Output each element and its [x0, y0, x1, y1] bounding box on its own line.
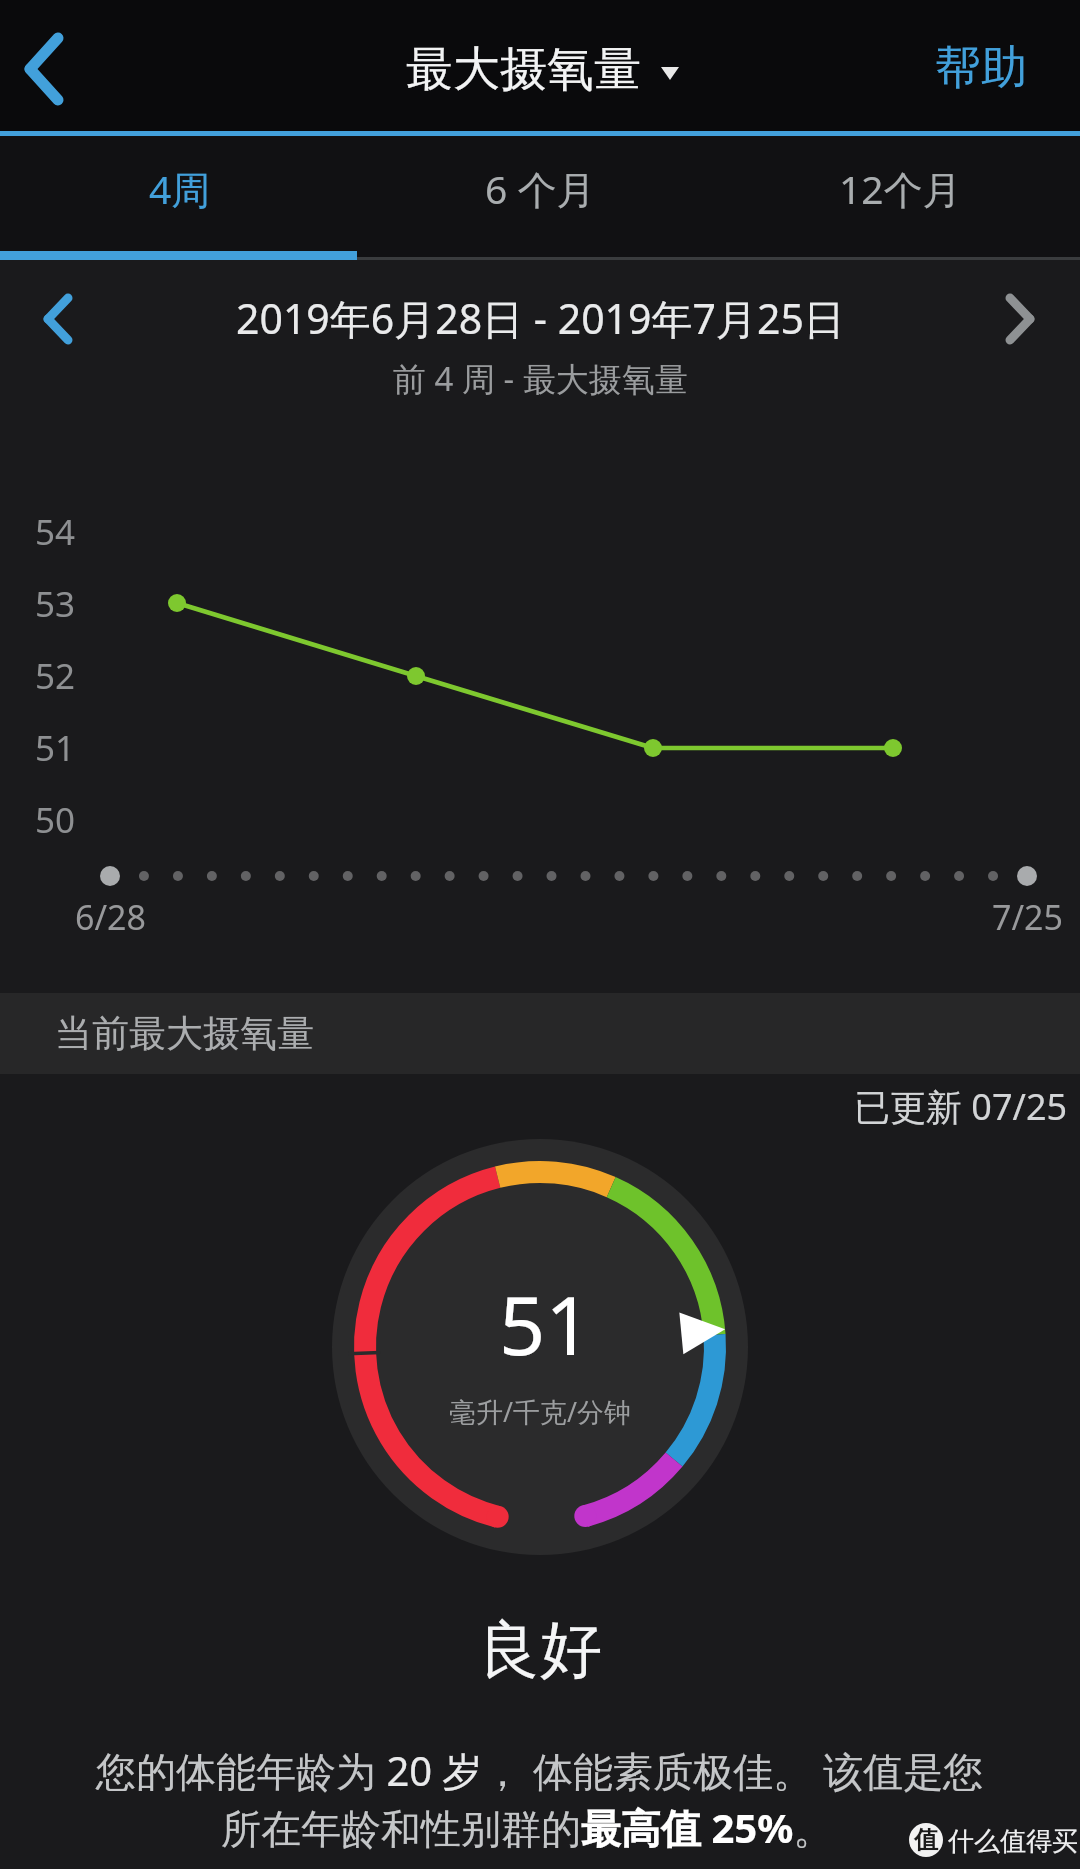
staticText: 所在年龄和性别群的最高值 25%。: [221, 1800, 834, 1855]
staticText: 54: [35, 508, 76, 556]
button[interactable]: [980, 280, 1060, 360]
staticText: 6 个月: [485, 162, 596, 215]
button[interactable]: 6 个月: [360, 129, 720, 247]
staticText: 53: [35, 580, 76, 628]
staticText: 最大摄氧量: [406, 40, 641, 99]
button[interactable]: [10, 20, 100, 115]
staticText: 已更新 07/25: [854, 1082, 1068, 1131]
button[interactable]: 帮助: [901, 28, 1061, 108]
staticText: 50: [35, 796, 76, 844]
button[interactable]: 12个月: [720, 129, 1080, 247]
staticText: 您的体能年龄为 20 岁， 体能素质极佳。 该值是您: [96, 1743, 984, 1798]
staticText: 当前最大摄氧量: [55, 1010, 314, 1057]
staticText: 6/28: [75, 894, 146, 940]
staticText: 帮助: [935, 39, 1027, 97]
staticText: 51: [35, 724, 76, 772]
staticText: 7/25: [992, 894, 1063, 940]
staticText: 51: [499, 1268, 592, 1378]
staticText: 52: [35, 652, 76, 700]
staticText: 4周: [149, 162, 211, 215]
staticText: 良好: [478, 1611, 602, 1689]
staticText: 前 4 周 - 最大摄氧量: [393, 356, 688, 401]
button[interactable]: [20, 280, 100, 360]
staticText: 什么值得买: [948, 1825, 1078, 1858]
staticText: 12个月: [839, 162, 962, 215]
button[interactable]: 最大摄氧量: [363, 30, 683, 108]
staticText: 毫升/千克/分钟: [449, 1393, 632, 1430]
button[interactable]: 4周: [0, 129, 360, 247]
staticText: 值: [914, 1825, 938, 1855]
staticText: 2019年6月28日 - 2019年7月25日: [236, 290, 845, 346]
